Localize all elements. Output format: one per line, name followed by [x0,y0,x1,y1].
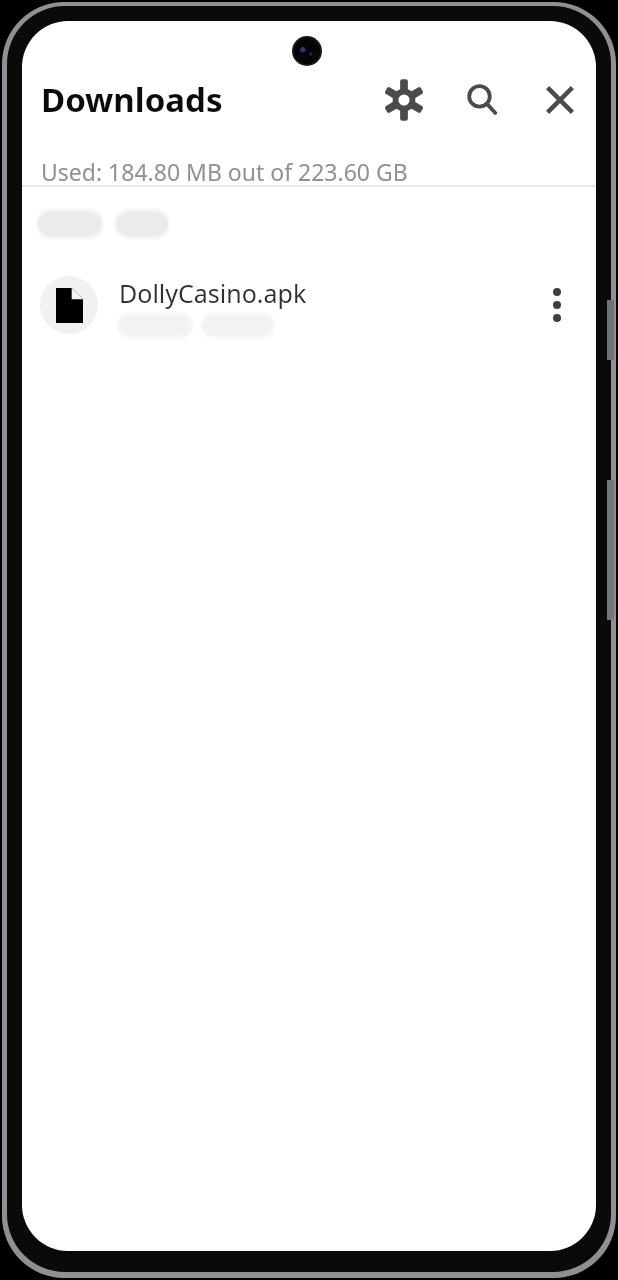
button[interactable]: More options [530,278,584,332]
button[interactable]: DollyCasino.apk [22,261,596,349]
button[interactable]: Search [456,74,508,126]
button[interactable]: Settings [378,74,430,126]
staticText: Downloads [41,77,223,122]
button[interactable]: Close [534,74,586,126]
staticText: DollyCasino.apk [119,276,307,310]
staticText: Used: 184.80 MB out of 223.60 GB [41,156,408,187]
